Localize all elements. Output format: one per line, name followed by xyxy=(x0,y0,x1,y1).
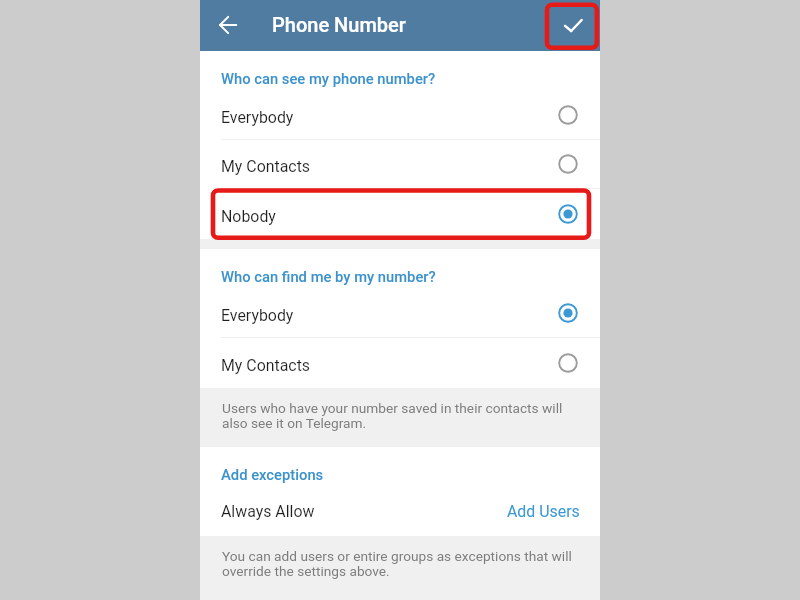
staticText: Everybody xyxy=(221,108,558,127)
staticText: Always Allow xyxy=(221,502,507,521)
button[interactable]: Back xyxy=(200,0,256,49)
button[interactable]: Always Allow xyxy=(200,487,600,536)
staticText: Who can find me by my number? xyxy=(221,268,436,285)
button[interactable]: My Contacts xyxy=(200,338,600,388)
staticText: Everybody xyxy=(221,306,558,325)
staticText: Phone Number xyxy=(272,13,406,36)
button[interactable]: Nobody xyxy=(200,189,600,239)
staticText: Users who have your number saved in thei… xyxy=(222,400,586,432)
staticText: Nobody xyxy=(221,207,558,226)
staticText: My Contacts xyxy=(221,356,558,375)
staticText: My Contacts xyxy=(221,157,558,176)
staticText: You can add users or entire groups as ex… xyxy=(222,548,586,580)
button[interactable]: Done xyxy=(547,1,599,49)
button[interactable]: My Contacts xyxy=(200,140,600,189)
staticText: Add exceptions xyxy=(221,466,324,483)
button[interactable]: Everybody xyxy=(200,289,600,338)
staticText: Who can see my phone number? xyxy=(221,70,436,87)
button[interactable]: Everybody xyxy=(200,91,600,140)
staticText: Add Users xyxy=(507,502,580,521)
